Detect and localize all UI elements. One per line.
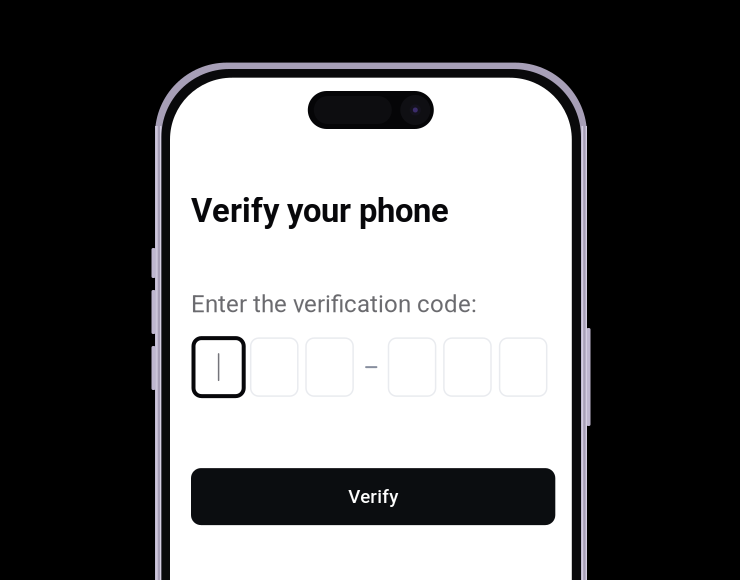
button[interactable]: Verify xyxy=(191,468,555,525)
staticText: Verify your phone xyxy=(191,192,449,230)
button[interactable]: Code digit 6 xyxy=(500,338,547,396)
button[interactable]: Code digit 5 xyxy=(444,338,491,396)
staticText: Enter the verification code: xyxy=(191,290,477,318)
button[interactable]: Code digit 2 xyxy=(251,338,298,396)
staticText: Verify xyxy=(348,486,398,508)
button[interactable]: Code digit 1 xyxy=(193,338,244,396)
button[interactable]: Code digit 4 xyxy=(388,338,436,396)
button[interactable]: Code digit 3 xyxy=(306,338,353,396)
